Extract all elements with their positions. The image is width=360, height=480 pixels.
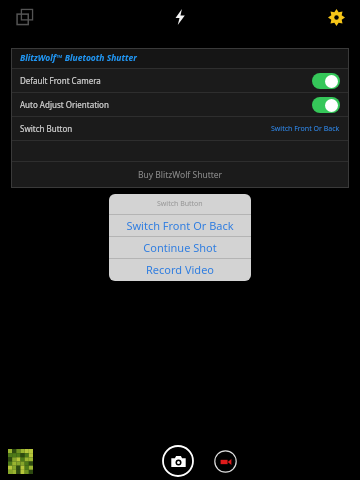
staticText: Record Video <box>146 262 214 277</box>
button[interactable]: Buy BlitzWolf Shutter <box>11 162 349 188</box>
button[interactable]: Gallery <box>8 449 33 474</box>
staticText: Auto Adjust Orientation <box>20 99 109 110</box>
button[interactable]: Record video <box>214 450 237 473</box>
button[interactable]: Switch Front Or Back <box>109 215 251 236</box>
button[interactable]: Flash <box>165 2 195 32</box>
staticText: Switch Button <box>157 199 203 209</box>
staticText: Switch Front Or Back <box>271 124 340 134</box>
staticText: BlitzWolf™ Bluetooth Shutter <box>20 52 137 64</box>
staticText: Switch Front Or Back <box>126 218 234 233</box>
button[interactable]: Auto Adjust Orientation <box>11 93 349 116</box>
button[interactable]: Default Front Camera <box>11 69 349 92</box>
button[interactable]: Switch Button <box>11 117 349 140</box>
staticText: Buy BlitzWolf Shutter <box>138 169 223 181</box>
button[interactable]: Take photo <box>162 445 194 477</box>
button[interactable]: Switch camera <box>10 2 40 32</box>
button[interactable]: Record Video <box>109 259 251 280</box>
button[interactable]: Settings <box>321 2 351 32</box>
staticText: Default Front Camera <box>20 75 101 86</box>
staticText: Continue Shot <box>143 240 217 255</box>
button[interactable]: Continue Shot <box>109 237 251 258</box>
staticText: Switch Button <box>20 123 73 134</box>
